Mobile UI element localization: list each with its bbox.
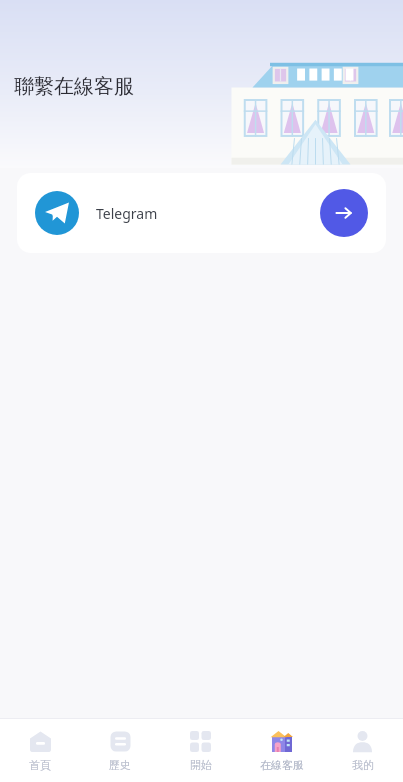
staticText: 聯繫在線客服 xyxy=(14,74,134,99)
button[interactable]: 我的 xyxy=(322,719,403,782)
staticText: 在線客服 xyxy=(260,758,304,772)
button[interactable]: 歷史 xyxy=(80,719,160,782)
staticText: 開始 xyxy=(190,758,212,772)
button[interactable]: 首頁 xyxy=(0,719,80,782)
button[interactable]: Telegram xyxy=(17,173,386,253)
button[interactable]: 在線客服 xyxy=(241,719,322,782)
button[interactable]: 開始 xyxy=(160,719,241,782)
button[interactable]: Open Telegram xyxy=(320,189,368,237)
staticText: 歷史 xyxy=(109,758,131,772)
staticText: 首頁 xyxy=(29,758,51,772)
staticText: 我的 xyxy=(352,758,374,772)
staticText: Telegram xyxy=(96,204,158,223)
